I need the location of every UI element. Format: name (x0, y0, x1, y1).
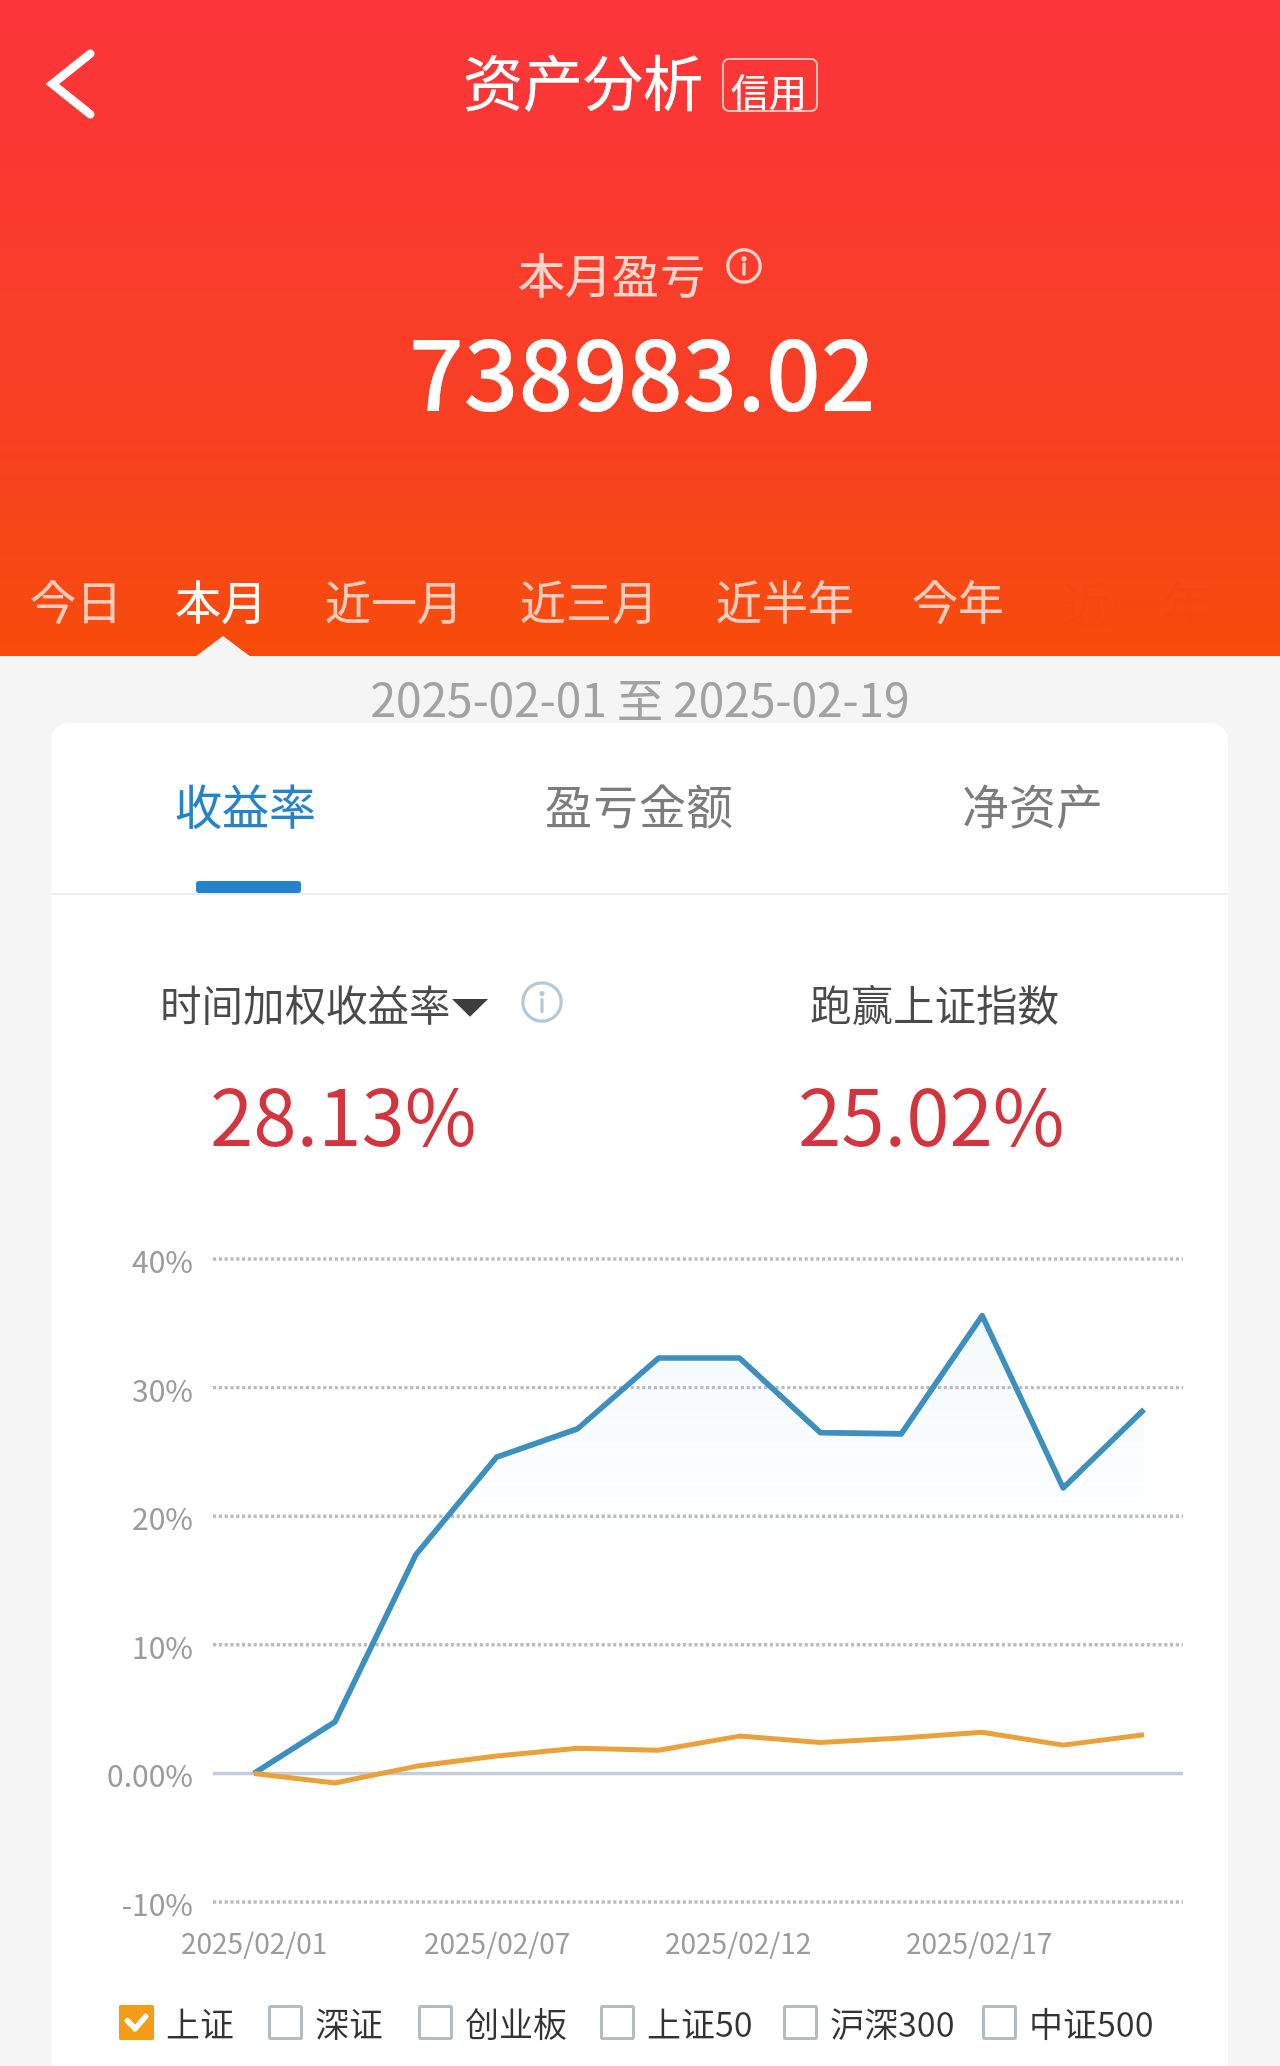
staticText: 0.00% (20, 1752, 193, 1795)
button[interactable]: 信用 (722, 58, 818, 112)
staticText: 跑赢上证指数 (810, 973, 1060, 1033)
button[interactable]: Back (20, 30, 128, 138)
staticText: 今日 (30, 566, 122, 633)
staticText: 25.02% (798, 1056, 1065, 1169)
staticText: 深证 (315, 1998, 383, 2047)
staticText: 收益率 (175, 769, 316, 837)
staticText: 今年 (912, 566, 1004, 633)
button[interactable]: 上证 (113, 1992, 240, 2053)
staticText: 中证500 (1029, 1998, 1154, 2047)
button[interactable]: 本月 (159, 552, 283, 647)
staticText: 738983.02 (409, 300, 876, 439)
button[interactable]: 近半年 (700, 552, 870, 647)
staticText: 信用 (731, 62, 808, 116)
staticText: 时间加权收益率 (160, 973, 451, 1033)
staticText: 近半年 (716, 566, 854, 633)
staticText: 盈亏金额 (545, 769, 733, 837)
staticText: 上证50 (647, 1998, 753, 2047)
staticText: 创业板 (465, 1998, 567, 2047)
button[interactable]: Info (726, 248, 762, 284)
button[interactable]: 净资产 (942, 747, 1123, 859)
staticText: 本月盈亏 (518, 238, 706, 306)
button[interactable]: 盈亏金额 (525, 747, 753, 859)
button[interactable]: 沪深300 (777, 1992, 961, 2053)
button[interactable]: 中证500 (976, 1992, 1160, 2053)
staticText: 本月 (175, 566, 267, 633)
staticText: 近一月 (325, 566, 463, 633)
button[interactable]: 今年 (896, 552, 1020, 647)
button[interactable]: 上证50 (594, 1992, 759, 2053)
button[interactable]: 时间加权收益率 (154, 967, 495, 1039)
staticText: 28.13% (210, 1056, 477, 1169)
staticText: 2025/02/07 (424, 1922, 571, 1963)
staticText: 沪深300 (830, 1998, 955, 2047)
staticText: 近三月 (520, 566, 658, 633)
staticText: 2025-02-01 至 2025-02-19 (0, 664, 1280, 731)
staticText: 20% (20, 1495, 193, 1538)
staticText: 10% (20, 1624, 193, 1667)
staticText: 2025/02/12 (665, 1922, 812, 1963)
button[interactable]: 近三月 (504, 552, 674, 647)
staticText: 40% (20, 1238, 193, 1281)
staticText: -10% (20, 1881, 193, 1924)
button[interactable]: 创业板 (412, 1992, 573, 2053)
staticText: 2025/02/01 (181, 1922, 328, 1963)
button[interactable]: 收益率 (155, 747, 336, 859)
staticText: 30% (20, 1367, 193, 1410)
staticText: 上证 (166, 1998, 234, 2047)
staticText: 净资产 (962, 769, 1103, 837)
staticText: 资产分析 (463, 36, 703, 123)
button[interactable]: 近一月 (309, 552, 479, 647)
button[interactable]: 今日 (14, 552, 138, 647)
button[interactable]: 深证 (262, 1992, 389, 2053)
button[interactable]: Info (521, 981, 563, 1023)
staticText: 2025/02/17 (906, 1922, 1053, 1963)
